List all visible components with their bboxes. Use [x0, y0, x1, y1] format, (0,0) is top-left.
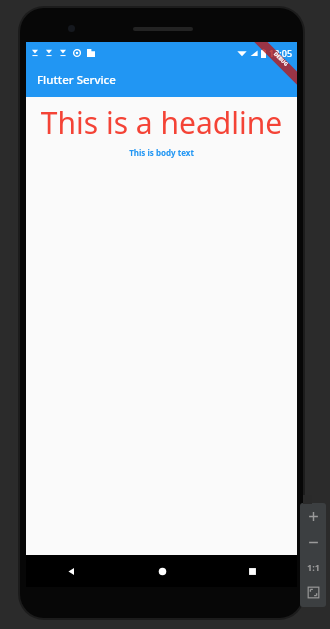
button[interactable]: Flutter Service — [26, 63, 297, 97]
staticText: Flutter Service — [37, 72, 116, 88]
staticText: This is a headline — [26, 102, 297, 143]
button[interactable]: Home — [117, 555, 207, 587]
staticText: 1:1 — [307, 561, 320, 573]
button[interactable]: Actual size — [300, 555, 326, 579]
button[interactable]: Zoom out — [300, 529, 326, 555]
staticText: DEBUG — [272, 51, 290, 68]
staticText: 13:05 — [269, 47, 293, 59]
button[interactable]: Back — [26, 555, 117, 587]
staticText: This is body text — [26, 147, 297, 158]
button[interactable]: Zoom in — [300, 503, 326, 529]
button[interactable]: Fullscreen — [300, 579, 326, 605]
button[interactable]: Recent apps — [207, 555, 297, 587]
